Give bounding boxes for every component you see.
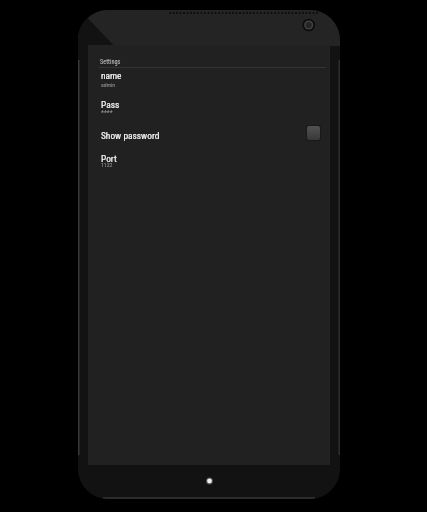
staticText: Pass (101, 99, 120, 110)
staticText: Show password (101, 130, 160, 141)
button[interactable]: Show password (88, 122, 330, 148)
button[interactable]: Port (88, 148, 330, 173)
staticText: **** (101, 109, 113, 117)
staticText: Port (101, 153, 117, 164)
staticText: 1122 (101, 162, 113, 169)
staticText: Settings (100, 58, 121, 65)
button[interactable]: Pass (88, 95, 330, 121)
staticText: admin (101, 82, 116, 89)
button[interactable]: name (88, 69, 330, 94)
staticText: name (101, 70, 122, 81)
